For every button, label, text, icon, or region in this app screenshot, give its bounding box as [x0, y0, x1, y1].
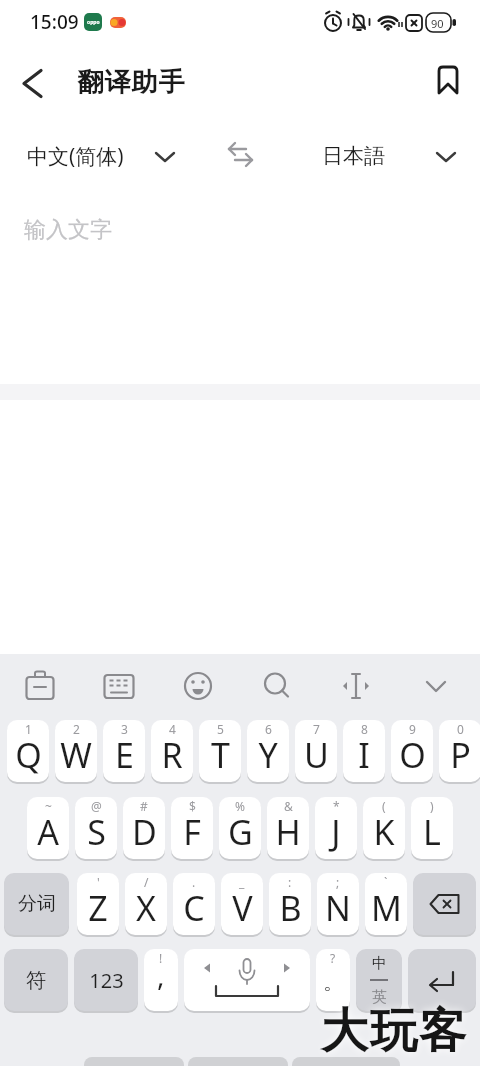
button[interactable]: ; [317, 873, 359, 935]
staticText: @ [91, 798, 102, 814]
staticText: X [136, 885, 156, 931]
button[interactable]: . [173, 873, 215, 935]
button[interactable] [12, 658, 68, 710]
button[interactable] [91, 658, 147, 710]
staticText: Q [15, 732, 42, 778]
staticText: ~ [45, 798, 52, 814]
button[interactable] [328, 658, 384, 710]
button[interactable]: : [269, 873, 311, 935]
staticText: 中文(简体) [27, 142, 124, 171]
button[interactable]: 3 [103, 720, 145, 782]
staticText: L [423, 809, 441, 855]
staticText: 5 [217, 721, 224, 737]
button[interactable]: 0 [439, 720, 480, 782]
button[interactable] [413, 873, 476, 935]
staticText: V [232, 885, 253, 931]
button[interactable] [249, 658, 305, 710]
staticText: S [87, 809, 106, 855]
button[interactable]: 1 [7, 720, 49, 782]
button[interactable]: 7 [295, 720, 337, 782]
staticText: G [228, 809, 253, 855]
staticText: # [140, 798, 148, 814]
button[interactable]: 中 [356, 949, 402, 1011]
staticText: Z [88, 885, 108, 931]
button[interactable]: ( [363, 797, 405, 859]
staticText: I [358, 732, 370, 778]
staticText: 翻译助手 [77, 66, 185, 99]
button[interactable]: % [219, 797, 261, 859]
button[interactable]: $ [171, 797, 213, 859]
button[interactable] [218, 134, 264, 178]
button[interactable]: _ [221, 873, 263, 935]
button[interactable] [408, 658, 464, 710]
button[interactable]: ~ [27, 797, 69, 859]
staticText: N [325, 885, 351, 931]
staticText: ! [159, 950, 163, 966]
button[interactable]: & [267, 797, 309, 859]
button[interactable]: 8 [343, 720, 385, 782]
button[interactable]: ' [77, 873, 119, 935]
button[interactable]: ) [411, 797, 453, 859]
staticText: B [279, 885, 302, 931]
staticText: 4 [169, 721, 176, 737]
staticText: P [450, 732, 471, 778]
button[interactable]: 2 [55, 720, 97, 782]
button[interactable]: ! [144, 949, 178, 1011]
staticText: 英 [372, 988, 387, 1007]
button[interactable]: 分词 [4, 873, 69, 935]
staticText: F [183, 809, 201, 855]
button[interactable]: * [315, 797, 357, 859]
staticText: 输入文字 [24, 216, 112, 244]
button[interactable] [408, 949, 476, 1011]
staticText: 90 [431, 16, 444, 31]
staticText: 6 [265, 721, 272, 737]
staticText: J [331, 809, 341, 855]
staticText: 2 [73, 721, 80, 737]
staticText: H [275, 809, 301, 855]
button[interactable] [428, 60, 468, 100]
button[interactable]: 6 [247, 720, 289, 782]
staticText: ; [336, 874, 340, 890]
button[interactable]: # [123, 797, 165, 859]
staticText: : [288, 874, 292, 890]
button[interactable]: @ [75, 797, 117, 859]
staticText: 3 [121, 721, 128, 737]
button[interactable]: 9 [391, 720, 433, 782]
staticText: _ [239, 874, 245, 890]
staticText: 7 [313, 721, 320, 737]
button[interactable]: ? [316, 949, 350, 1011]
staticText: K [373, 809, 395, 855]
staticText: 0 [457, 721, 464, 737]
staticText: 。 [323, 969, 344, 995]
staticText: oppo [87, 19, 100, 26]
staticText: R [161, 732, 183, 778]
staticText: , [157, 956, 165, 994]
staticText: / [144, 874, 149, 890]
button[interactable] [184, 949, 310, 1011]
button[interactable] [170, 658, 226, 710]
staticText: 9 [409, 721, 416, 737]
button[interactable]: 日本語 [312, 134, 468, 178]
button[interactable]: 中文(简体) [20, 134, 190, 178]
staticText: Y [258, 732, 278, 778]
button[interactable] [10, 66, 54, 102]
staticText: $ [189, 798, 196, 814]
button[interactable]: ` [365, 873, 407, 935]
button[interactable]: 5 [199, 720, 241, 782]
staticText: ` [384, 874, 388, 890]
staticText: 8 [361, 721, 368, 737]
button[interactable]: 4 [151, 720, 193, 782]
staticText: T [211, 732, 230, 778]
staticText: 123 [89, 967, 124, 994]
button[interactable]: / [125, 873, 167, 935]
staticText: M [371, 885, 402, 931]
staticText: & [284, 798, 293, 814]
staticText: 大玩客 [320, 1002, 467, 1061]
button[interactable]: 符 [4, 949, 68, 1011]
staticText: O [399, 732, 426, 778]
button[interactable]: 123 [74, 949, 138, 1011]
staticText: * [333, 798, 340, 814]
staticText: 中 [372, 954, 387, 973]
staticText: ? [330, 950, 336, 966]
staticText: 符 [26, 968, 46, 993]
